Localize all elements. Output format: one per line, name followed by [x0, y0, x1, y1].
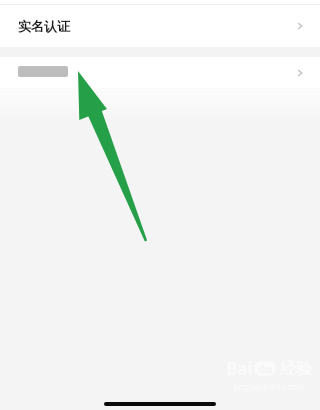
other: Open [296, 21, 306, 31]
button[interactable]: 实名认证 [0, 5, 320, 47]
button[interactable]: Open [0, 57, 320, 88]
staticText: 实名认证 [18, 18, 70, 34]
other: Annotation arrow [0, 0, 320, 410]
other: Open [296, 68, 306, 78]
